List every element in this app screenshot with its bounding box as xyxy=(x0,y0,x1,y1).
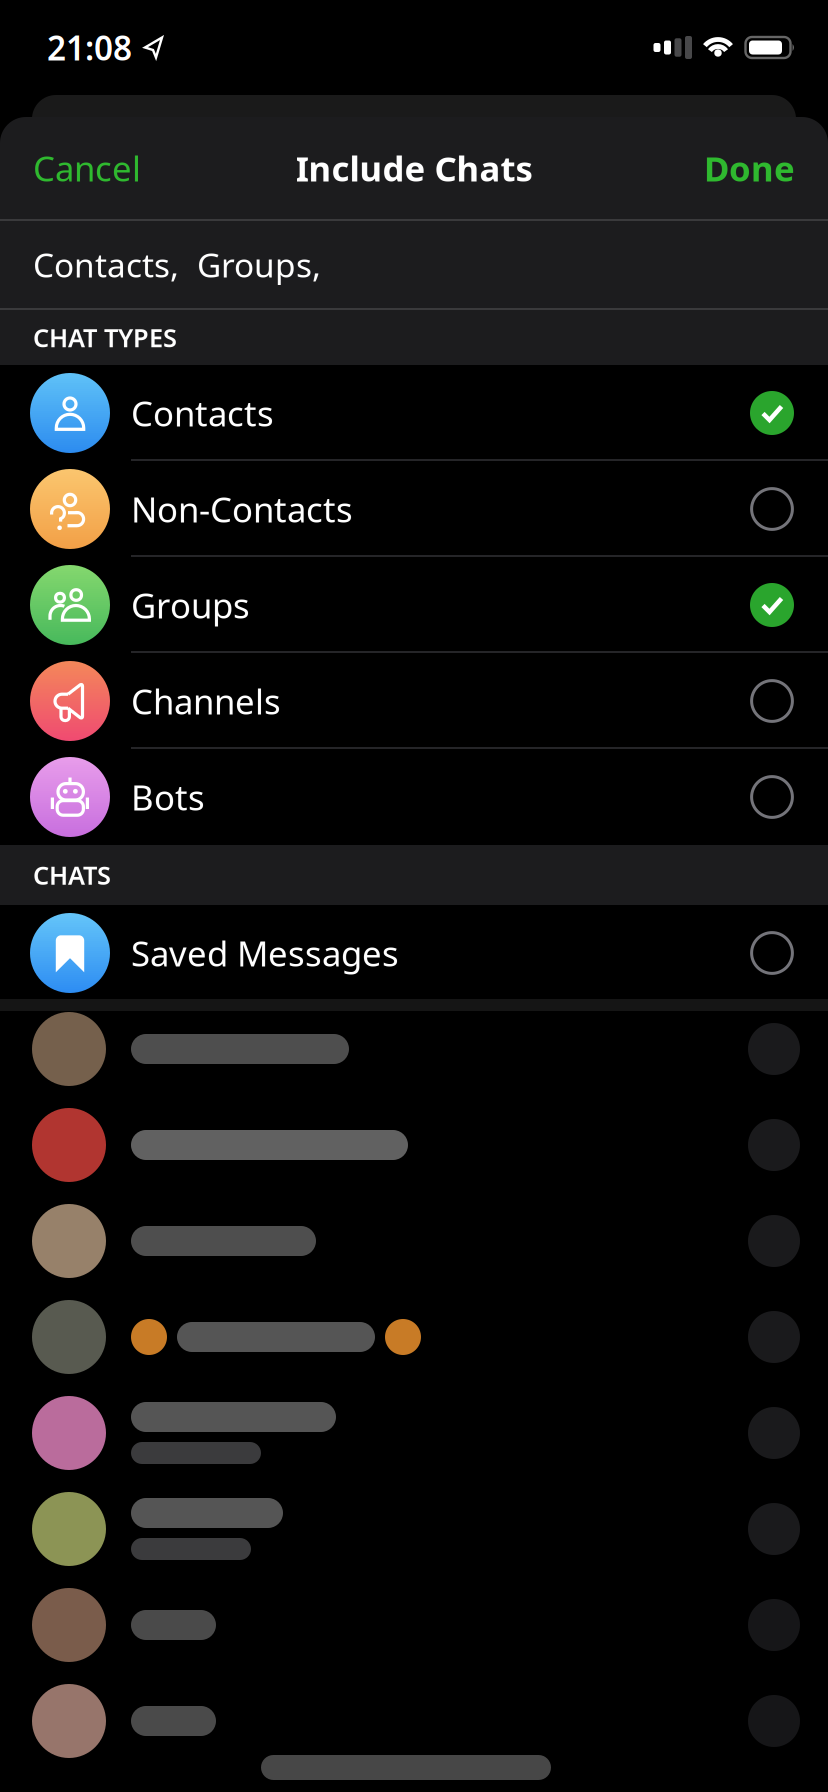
staticText: CHAT TYPES xyxy=(33,321,177,354)
button[interactable]: Chat xyxy=(0,1673,828,1769)
staticText: Groups xyxy=(131,582,250,628)
staticText: Include Chats xyxy=(295,145,532,191)
staticText: Channels xyxy=(131,678,281,724)
staticText: Contacts, Groups, xyxy=(33,242,321,287)
staticText: Cancel xyxy=(33,145,141,191)
button[interactable]: Contacts, Groups, xyxy=(0,221,828,308)
button[interactable]: Bots xyxy=(0,749,828,845)
button[interactable]: Channels xyxy=(0,653,828,749)
button[interactable]: Done xyxy=(704,145,795,191)
staticText: Done xyxy=(704,145,795,191)
button[interactable]: Groups xyxy=(0,557,828,653)
button[interactable]: Saved Messages xyxy=(0,905,828,1001)
button[interactable]: Chat xyxy=(0,1193,828,1289)
button[interactable]: Chat xyxy=(0,1289,828,1385)
staticText: 21:08 xyxy=(47,25,132,70)
staticText: Bots xyxy=(131,774,205,820)
staticText: Non-Contacts xyxy=(131,486,353,532)
button[interactable]: Chat xyxy=(0,1577,828,1673)
button[interactable]: Cancel xyxy=(33,145,141,191)
button[interactable]: Chat xyxy=(0,1001,828,1097)
staticText: CHATS xyxy=(33,858,111,892)
staticText: Saved Messages xyxy=(131,930,399,976)
button[interactable]: Non-Contacts xyxy=(0,461,828,557)
button[interactable]: Chat xyxy=(0,1097,828,1193)
button[interactable]: Contacts xyxy=(0,365,828,461)
staticText: Contacts xyxy=(131,390,274,436)
button[interactable]: Chat xyxy=(0,1481,828,1577)
button[interactable]: Chat xyxy=(0,1385,828,1481)
